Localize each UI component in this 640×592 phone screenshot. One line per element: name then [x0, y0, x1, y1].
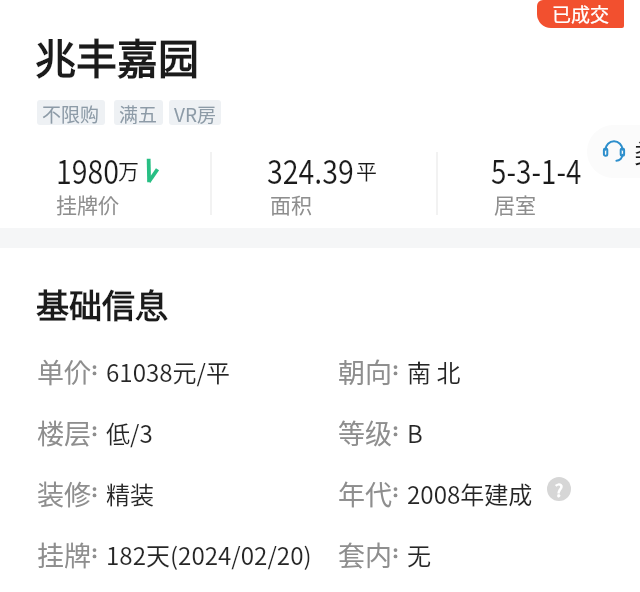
staticText: 324.39 — [267, 146, 354, 194]
staticText: 挂牌价 — [56, 189, 119, 219]
button[interactable]: 已成交 — [537, 0, 624, 28]
staticText: 1980 — [56, 146, 120, 194]
button[interactable]: 不限购 — [37, 100, 105, 125]
staticText: 平 — [356, 155, 377, 185]
staticText: 低/3 — [106, 415, 153, 450]
staticText: 满五 — [119, 100, 158, 125]
staticText: 等级 — [338, 413, 392, 452]
staticText: 类 — [634, 133, 640, 171]
staticText: 已成交 — [552, 0, 610, 28]
button[interactable]: 在线咨询 — [587, 125, 640, 178]
staticText: 182天(2024/02/20) — [106, 537, 312, 572]
staticText: 单价 — [37, 352, 91, 391]
staticText: B — [407, 415, 423, 450]
staticText: 2008年建成 — [407, 476, 533, 511]
button[interactable]: 满五 — [114, 100, 163, 125]
staticText: 基础信息 — [36, 280, 168, 328]
staticText: 装修 — [37, 474, 91, 513]
staticText: 居室 — [494, 189, 536, 219]
staticText: 无 — [407, 537, 431, 572]
staticText: 万 — [118, 155, 139, 185]
staticText: 套内 — [338, 535, 392, 574]
button[interactable]: VR房 — [169, 100, 221, 125]
staticText: VR房 — [174, 100, 216, 125]
staticText: 兆丰嘉园 — [35, 26, 199, 85]
staticText: 挂牌 — [37, 535, 91, 574]
staticText: 朝向 — [338, 352, 392, 391]
staticText: 楼层 — [37, 413, 91, 452]
staticText: ? — [555, 477, 564, 501]
staticText: 面积 — [270, 189, 312, 219]
staticText: 不限购 — [42, 100, 100, 125]
button[interactable]: 帮助 — [547, 477, 571, 501]
staticText: 年代 — [338, 474, 392, 513]
staticText: 61038元/平 — [106, 354, 231, 389]
staticText: 南 北 — [407, 354, 461, 389]
staticText: 5-3-1-4 — [491, 146, 582, 194]
staticText: 精装 — [106, 476, 154, 511]
